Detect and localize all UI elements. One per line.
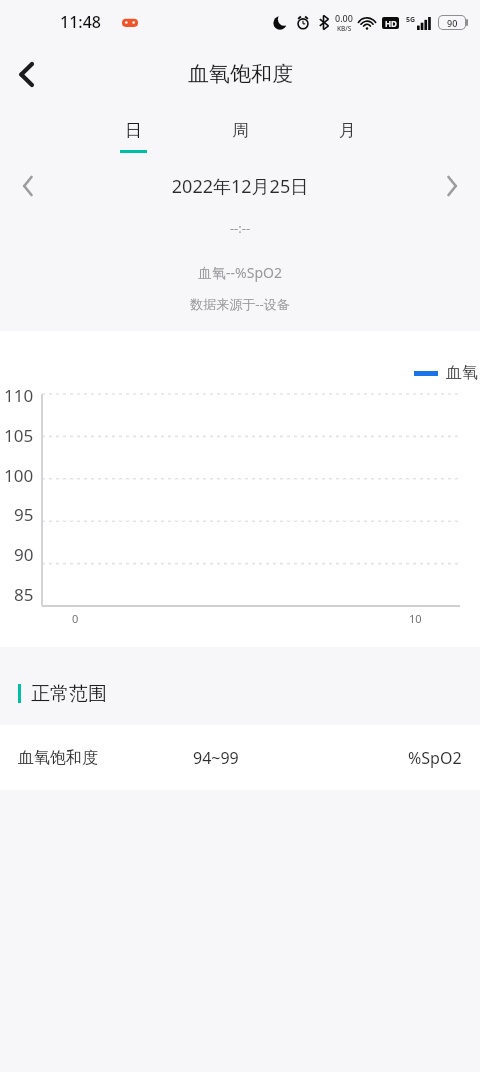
button[interactable]: 月 — [294, 118, 401, 155]
staticText: 血氧饱和度 — [188, 61, 293, 87]
staticText: 正常范围 — [31, 682, 107, 706]
staticText: 5G — [406, 15, 416, 25]
button[interactable]: Back — [0, 48, 52, 100]
staticText: 11:48 — [60, 11, 101, 33]
staticText: 94~99 — [193, 747, 408, 769]
staticText: 85 — [14, 583, 34, 606]
staticText: 日 — [125, 120, 142, 141]
staticText: --:-- — [0, 219, 480, 237]
staticText: 90 — [447, 17, 458, 29]
button[interactable]: 血氧饱和度 — [0, 725, 480, 790]
staticText: 90 — [14, 543, 34, 566]
staticText: 周 — [232, 120, 249, 141]
button[interactable]: 周 — [187, 118, 294, 155]
staticText: 10 — [409, 611, 422, 626]
staticText: 95 — [14, 503, 34, 526]
staticText: 0 — [72, 611, 79, 626]
button[interactable]: 日 — [80, 118, 187, 155]
staticText: 血氧--%SpO2 — [0, 263, 480, 282]
staticText: 0.00 — [335, 12, 353, 24]
staticText: 2022年12月25日 — [56, 174, 424, 199]
staticText: KB/S — [337, 24, 352, 33]
button[interactable]: Previous day — [0, 167, 56, 205]
staticText: HD — [385, 18, 397, 29]
staticText: 月 — [339, 120, 356, 141]
staticText: 血氧饱和度 — [18, 748, 193, 768]
staticText: 血氧 — [446, 363, 478, 383]
staticText: 数据来源于--设备 — [0, 295, 480, 313]
button[interactable]: Next day — [424, 167, 480, 205]
staticText: 100 — [4, 464, 34, 487]
staticText: 105 — [4, 424, 34, 447]
staticText: 110 — [4, 384, 34, 407]
staticText: %SpO2 — [408, 747, 462, 769]
